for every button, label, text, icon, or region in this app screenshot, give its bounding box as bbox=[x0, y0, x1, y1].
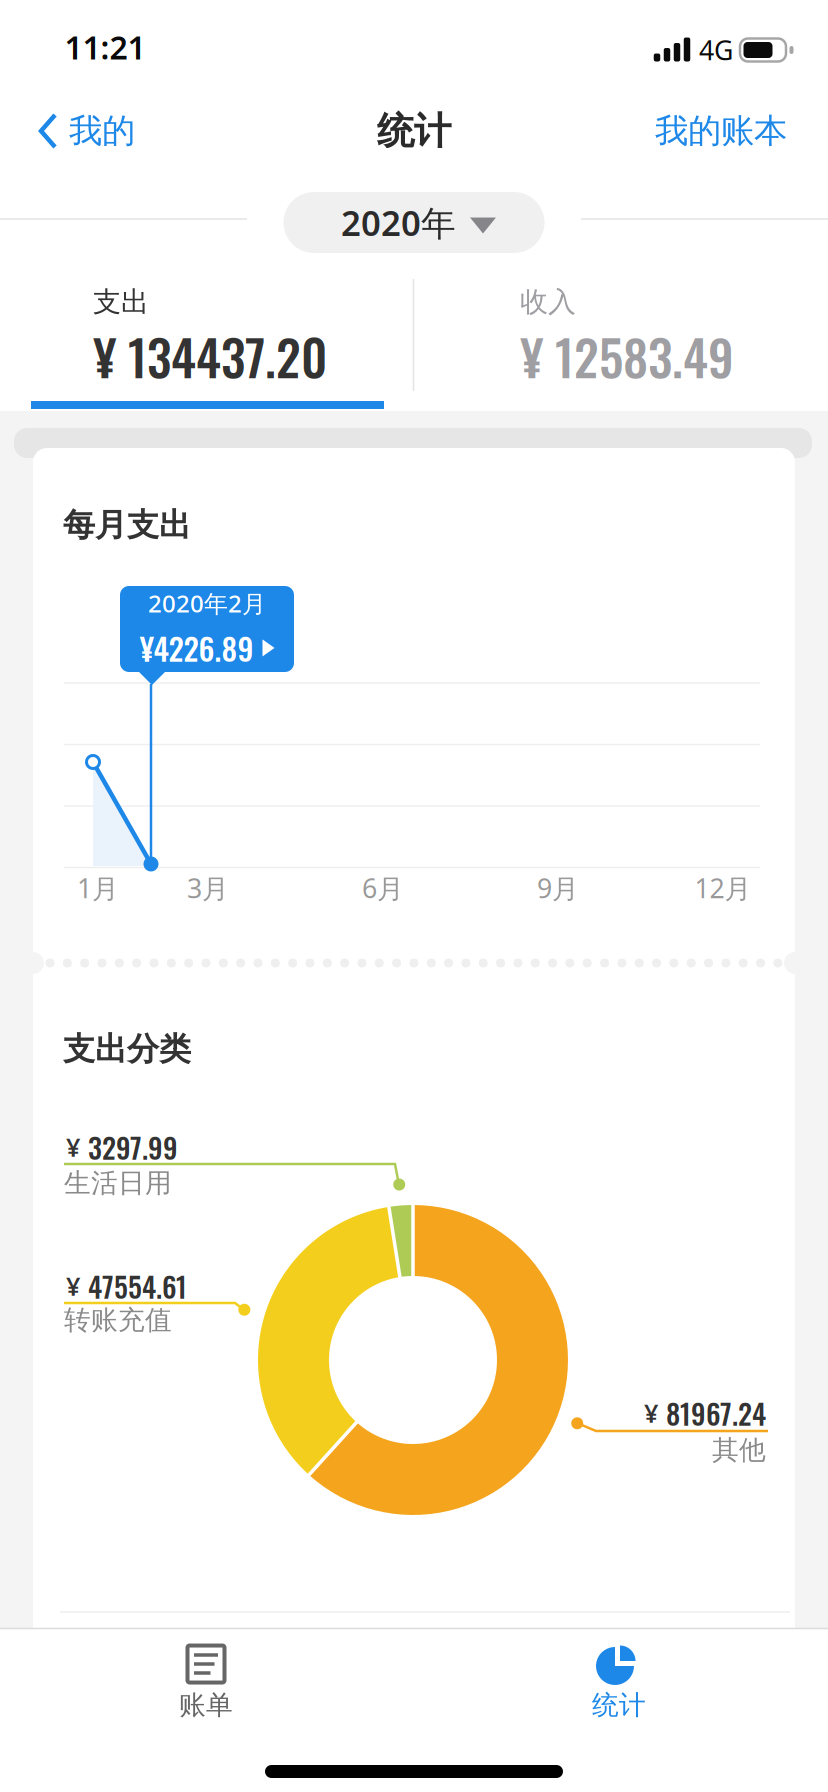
staticText: 其他 bbox=[712, 1434, 766, 1466]
staticText: 47554.61 bbox=[88, 1265, 187, 1307]
button[interactable]: 账单 bbox=[126, 1628, 286, 1738]
staticText: 转账充值 bbox=[64, 1304, 172, 1336]
button[interactable]: 我的 bbox=[39, 110, 135, 151]
staticText: 收入 bbox=[520, 285, 576, 319]
staticText: ¥ bbox=[66, 1130, 80, 1164]
button[interactable]: 我的账本 bbox=[655, 110, 787, 151]
staticText: 我的账本 bbox=[655, 110, 787, 151]
staticText: 统计 bbox=[592, 1689, 646, 1721]
staticText: 每月支出 bbox=[63, 505, 191, 545]
button[interactable]: 收入 bbox=[520, 270, 828, 390]
staticText: ¥ bbox=[644, 1396, 658, 1430]
staticText: 6月 bbox=[362, 870, 404, 906]
staticText: 统计 bbox=[377, 108, 451, 154]
staticText: ¥ bbox=[66, 1269, 80, 1303]
staticText: 2020年 bbox=[341, 199, 456, 245]
button[interactable]: 统计 bbox=[539, 1628, 699, 1738]
staticText: 12月 bbox=[694, 870, 751, 906]
staticText: 1月 bbox=[77, 870, 119, 906]
staticText: ¥ 12583.49 bbox=[520, 319, 734, 392]
staticText: ¥ 134437.20 bbox=[93, 319, 327, 392]
staticText: 11:21 bbox=[64, 26, 145, 68]
staticText: 支出分类 bbox=[63, 1029, 191, 1069]
staticText: 生活日用 bbox=[64, 1167, 172, 1199]
staticText: 账单 bbox=[179, 1689, 233, 1721]
staticText: 9月 bbox=[537, 870, 579, 906]
staticText: 我的 bbox=[69, 110, 135, 151]
staticText: 支出 bbox=[93, 285, 149, 319]
staticText: 2020年2月 bbox=[148, 587, 266, 619]
staticText: 81967.24 bbox=[666, 1392, 766, 1434]
button[interactable]: 2020年2月 bbox=[120, 586, 294, 672]
staticText: ¥4226.89 bbox=[139, 625, 253, 671]
staticText: 3月 bbox=[187, 870, 229, 906]
button[interactable]: 2020年 bbox=[283, 192, 544, 253]
button[interactable]: 支出 bbox=[93, 270, 433, 390]
staticText: 3297.99 bbox=[88, 1126, 178, 1168]
staticText: 4G bbox=[699, 32, 733, 68]
